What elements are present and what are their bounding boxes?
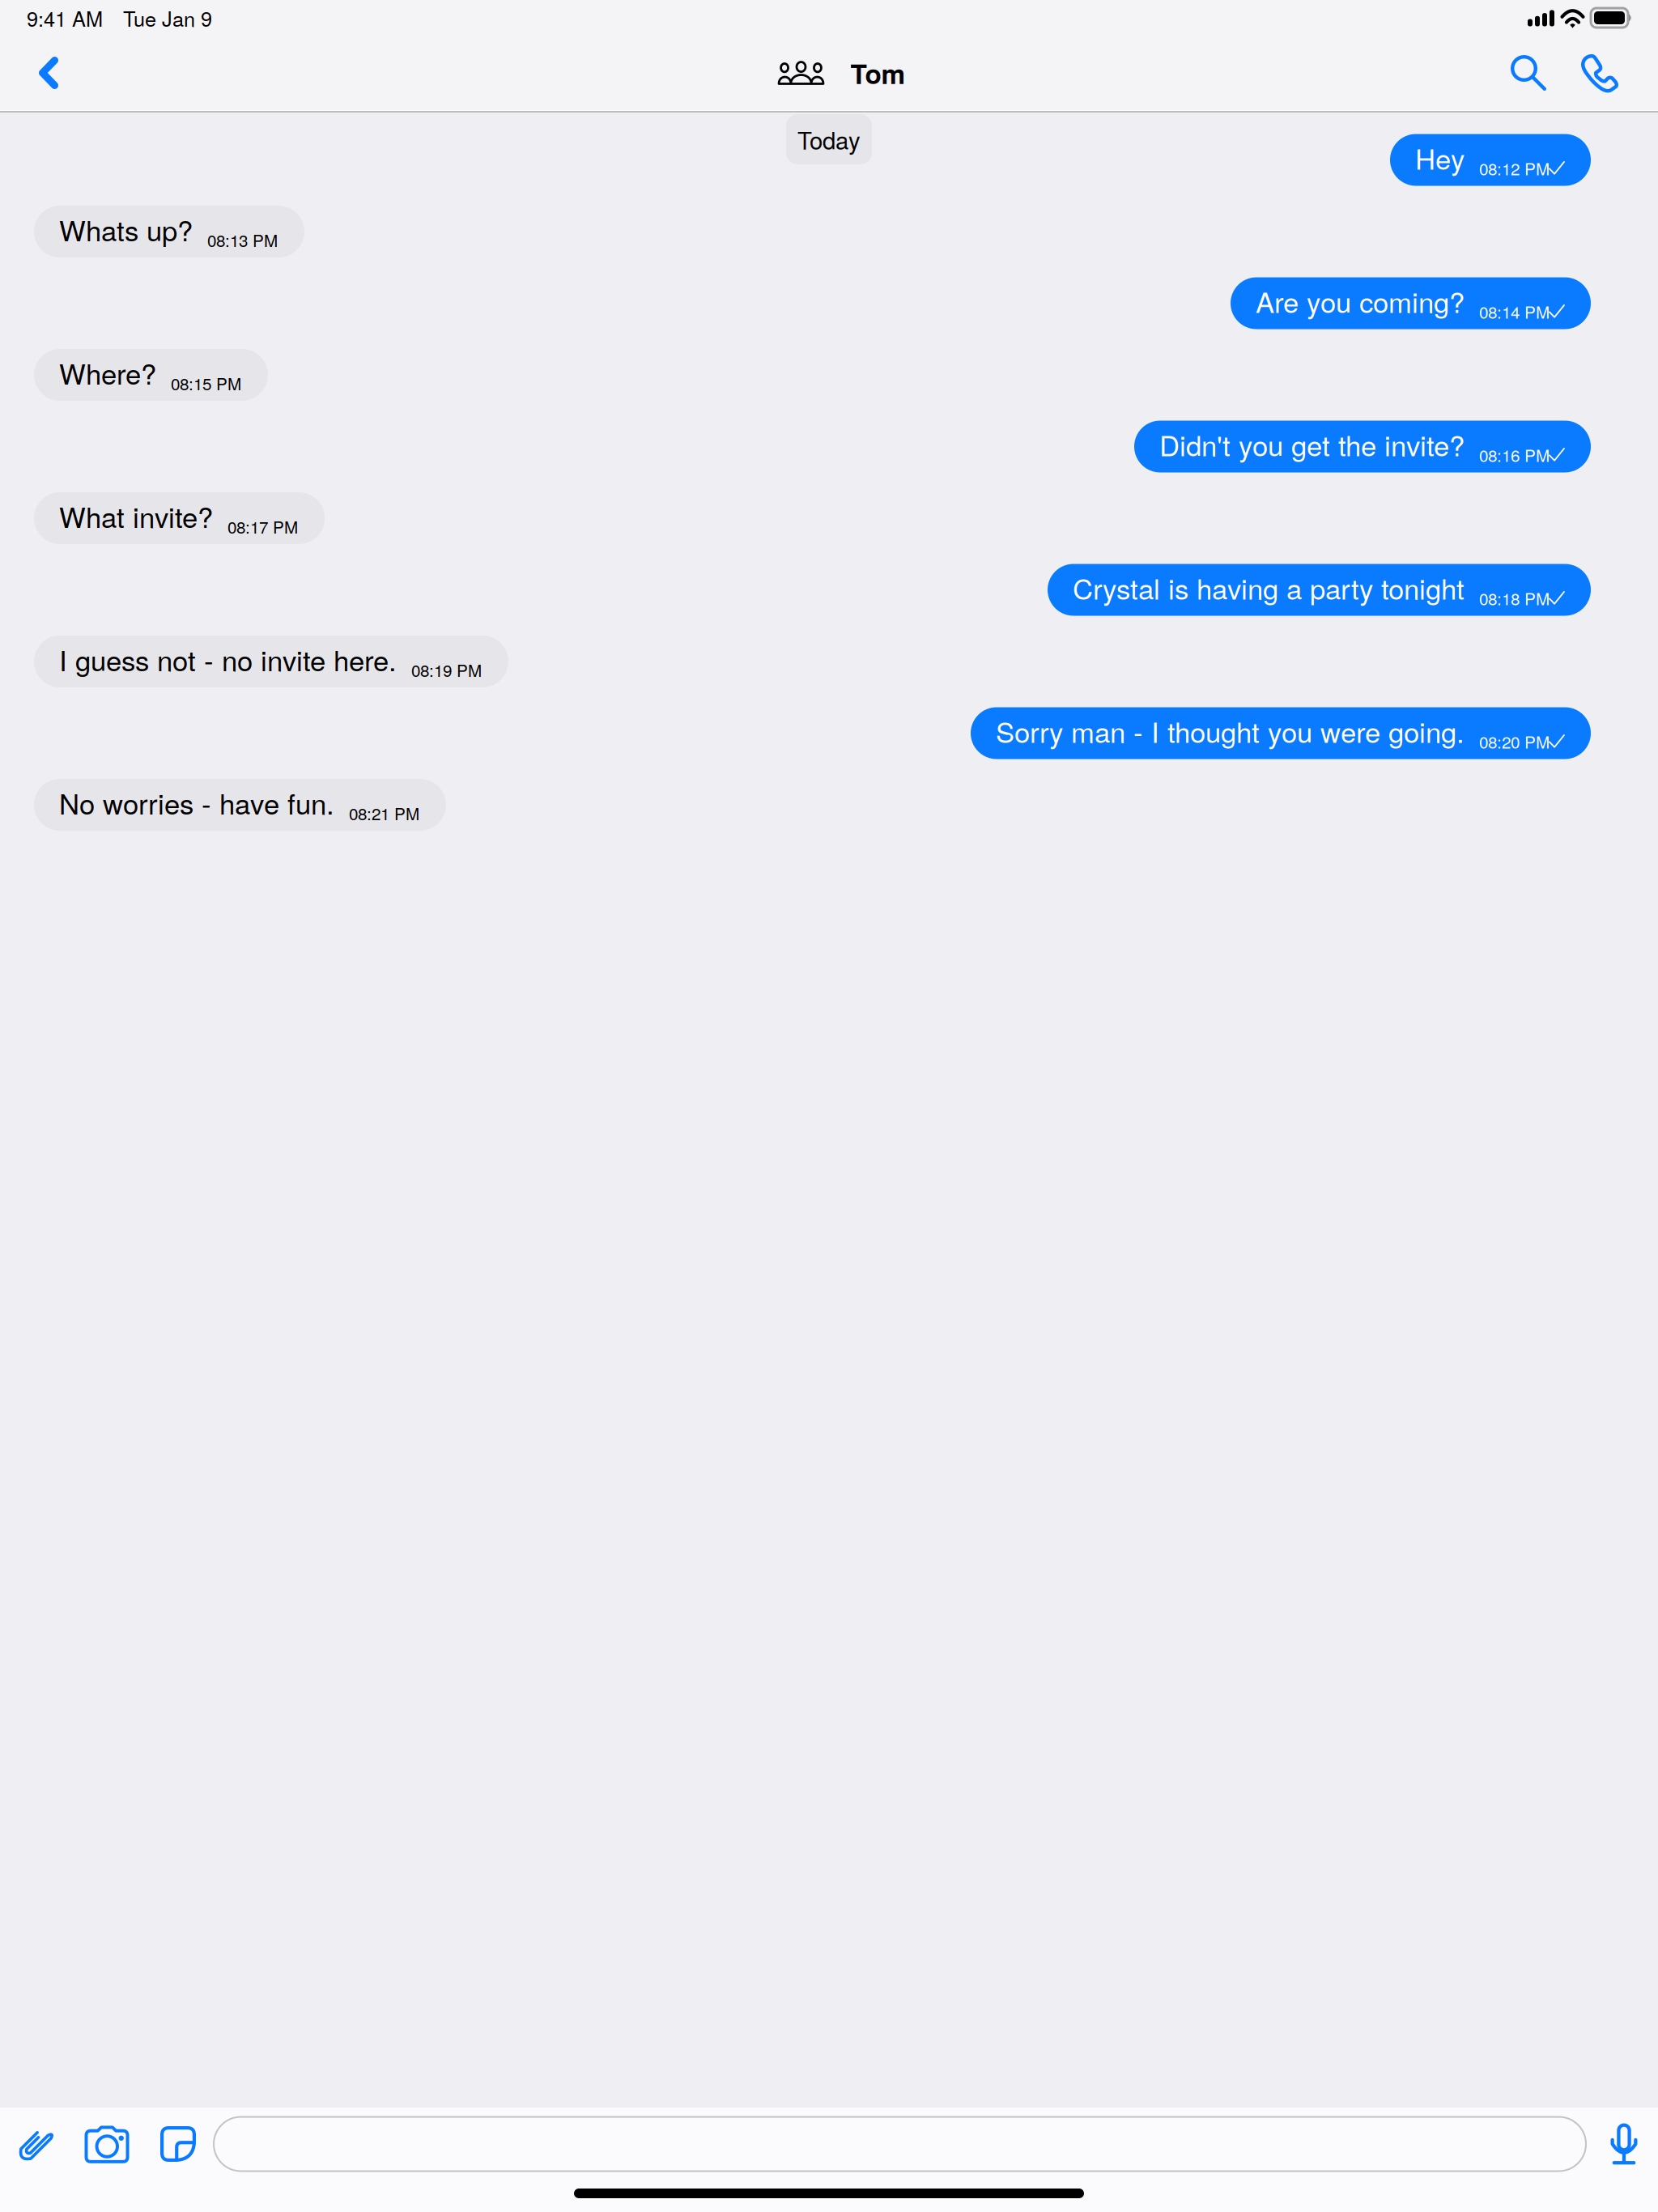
staticText: 08:21 PM	[349, 801, 419, 825]
staticText: Tom	[850, 54, 906, 92]
staticText: 08:13 PM	[207, 228, 278, 252]
button[interactable]: Back	[15, 39, 83, 107]
staticText: No worries - have fun.	[59, 782, 334, 822]
staticText: 08:12 PM	[1479, 156, 1550, 180]
staticText: 08:20 PM	[1479, 729, 1550, 753]
button[interactable]: Search	[1494, 39, 1562, 107]
staticText: What invite?	[59, 496, 213, 536]
staticText: Are you coming?	[1256, 281, 1465, 321]
staticText: Where?	[59, 352, 156, 393]
staticText: Sorry man - I thought you were going.	[996, 711, 1465, 751]
button[interactable]: Camera	[79, 2116, 134, 2172]
staticText: Crystal is having a party tonight	[1073, 567, 1465, 607]
button[interactable]: Dictate	[1601, 2116, 1647, 2172]
staticText: 08:17 PM	[227, 514, 298, 538]
button[interactable]: Call	[1564, 39, 1632, 107]
staticText: 08:19 PM	[411, 658, 482, 682]
staticText: 08:14 PM	[1479, 299, 1550, 323]
button[interactable]: Message	[214, 2117, 1586, 2171]
staticText: 9:41 AM	[27, 3, 103, 33]
staticText: 08:18 PM	[1479, 586, 1550, 610]
staticText: Whats up?	[59, 209, 193, 249]
staticText: 08:16 PM	[1479, 443, 1550, 467]
staticText: Tue Jan 9	[123, 3, 212, 33]
staticText: Didn't you get the invite?	[1159, 424, 1465, 464]
staticText: 08:15 PM	[171, 371, 241, 395]
button[interactable]: Stickers	[151, 2116, 206, 2172]
staticText: I guess not - no invite here.	[59, 639, 397, 679]
staticText: Today	[797, 122, 861, 156]
button[interactable]: Attach file	[8, 2116, 63, 2172]
staticText: Hey	[1415, 137, 1465, 178]
